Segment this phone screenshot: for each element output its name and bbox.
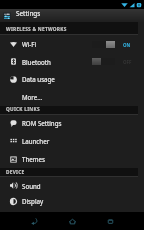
button[interactable]: Display	[0, 194, 144, 208]
button[interactable]: Bluetooth	[0, 53, 144, 70]
staticText: ROM Settings	[22, 119, 62, 127]
staticText: WIRELESS & NETWORKS	[6, 26, 67, 33]
button[interactable]: Themes	[0, 150, 144, 168]
button[interactable]: More...	[0, 88, 144, 106]
button[interactable]: Recent apps	[97, 212, 123, 230]
button[interactable]: Wi-Fi	[0, 35, 144, 53]
staticText: DEVICE	[6, 169, 25, 176]
staticText: More...	[22, 93, 43, 101]
staticText: Wi-Fi	[22, 40, 37, 48]
staticText: Display	[22, 197, 44, 205]
button[interactable]: Back	[21, 212, 47, 230]
staticText: Settings	[16, 9, 41, 18]
button[interactable]: Data usage	[0, 70, 144, 88]
staticText: Bluetooth	[22, 58, 51, 66]
staticText: QUICK LINKS	[6, 106, 40, 112]
staticText: Data usage	[22, 75, 55, 83]
staticText: Sound	[22, 182, 41, 190]
button[interactable]: Launcher	[0, 131, 144, 150]
button[interactable]: ROM Settings	[0, 115, 144, 131]
staticText: Themes	[22, 155, 45, 163]
staticText: ON	[123, 42, 131, 48]
staticText: Launcher	[22, 137, 50, 145]
button[interactable]: Sound	[0, 177, 144, 194]
button[interactable]: Home	[59, 212, 85, 230]
staticText: OFF	[123, 59, 132, 65]
